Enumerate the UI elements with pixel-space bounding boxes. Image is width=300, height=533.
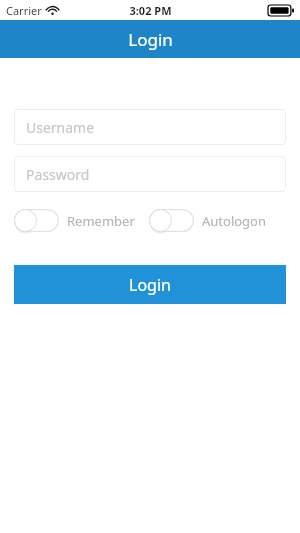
staticText: Username [26, 118, 95, 137]
staticText: Remember [67, 212, 135, 230]
button[interactable]: Autologon [149, 209, 267, 232]
staticText: Autologon [202, 212, 267, 230]
button[interactable]: Password [14, 156, 286, 192]
button[interactable]: Remember [14, 209, 135, 232]
staticText: Password [26, 165, 90, 184]
staticText: Carrier [6, 3, 42, 18]
staticText: Login [128, 28, 173, 51]
staticText: Login [129, 274, 171, 296]
button[interactable]: Login [14, 265, 286, 304]
button[interactable]: Username [14, 109, 286, 145]
staticText: 3:02 PM [129, 3, 172, 18]
